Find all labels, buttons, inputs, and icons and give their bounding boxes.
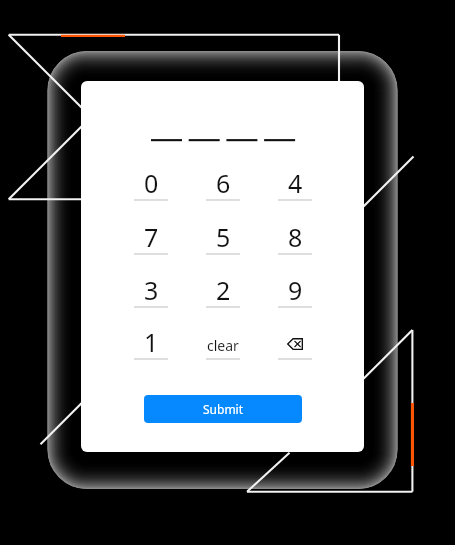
button[interactable]: 4 — [272, 162, 318, 204]
staticText: 7 — [144, 220, 159, 254]
staticText: 1 — [144, 325, 159, 359]
button[interactable]: 1 — [128, 321, 174, 363]
staticText: 6 — [216, 166, 231, 200]
staticText: 4 — [288, 166, 303, 200]
staticText: Submit — [203, 401, 244, 417]
button[interactable]: Submit — [144, 395, 302, 423]
staticText: clear — [207, 336, 239, 355]
staticText: 3 — [144, 273, 159, 307]
staticText: 9 — [288, 273, 303, 307]
button[interactable]: 9 — [272, 269, 318, 311]
button[interactable]: 7 — [128, 216, 174, 258]
button[interactable]: 6 — [200, 162, 246, 204]
button[interactable]: 2 — [200, 269, 246, 311]
staticText: 5 — [216, 220, 231, 254]
button[interactable]: clear — [200, 321, 246, 363]
button[interactable]: Backspace — [272, 321, 318, 363]
button[interactable]: 0 — [128, 162, 174, 204]
staticText: 8 — [288, 220, 303, 254]
staticText: 2 — [216, 273, 231, 307]
button[interactable]: 8 — [272, 216, 318, 258]
button[interactable]: 3 — [128, 269, 174, 311]
button[interactable]: 5 — [200, 216, 246, 258]
staticText: 0 — [144, 166, 159, 200]
